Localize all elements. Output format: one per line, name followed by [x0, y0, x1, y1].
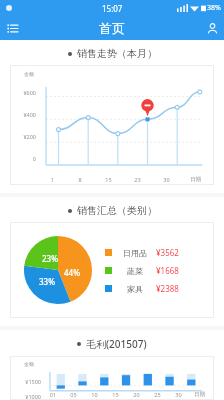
staticText: 蔬菜	[118, 266, 152, 276]
staticText: 20	[126, 391, 147, 398]
staticText: ¥1668	[156, 265, 179, 276]
staticText: 销售汇总（类别）	[77, 204, 157, 217]
staticText: 23	[123, 176, 152, 183]
staticText: 38%	[207, 3, 221, 13]
staticText: 日用品	[118, 248, 152, 258]
staticText: 毛利(201507)	[86, 337, 147, 351]
button[interactable]: 家具	[105, 283, 208, 294]
staticText: 25	[147, 391, 168, 398]
staticText: ¥200	[12, 133, 36, 140]
staticText: 日期	[189, 391, 210, 398]
button[interactable]: 蔬菜	[105, 265, 208, 276]
staticText: 金额	[24, 361, 34, 367]
staticText: 首页	[99, 20, 125, 36]
staticText: ¥3562	[156, 247, 179, 258]
button[interactable]: Profile	[200, 16, 224, 40]
staticText: ¥600	[12, 89, 36, 96]
staticText: 销售走势（本月）	[77, 47, 157, 60]
staticText: 30	[168, 391, 189, 398]
button[interactable]: Menu	[0, 16, 24, 40]
button[interactable]: 销售走势（本月）	[0, 40, 224, 193]
staticText: 01	[43, 391, 63, 398]
staticText: 15:07	[102, 3, 123, 14]
staticText: 0	[12, 155, 36, 162]
staticText: 30	[152, 176, 181, 183]
staticText: 8	[66, 176, 94, 183]
button[interactable]: 销售汇总（类别）	[0, 197, 224, 326]
staticText: ¥1500	[12, 378, 41, 385]
staticText: 15	[94, 176, 123, 183]
staticText: 05	[63, 391, 84, 398]
staticText: 10	[84, 391, 105, 398]
staticText: 家具	[118, 284, 152, 294]
staticText: 33%	[39, 276, 55, 287]
staticText: 23%	[42, 253, 58, 264]
staticText: ¥400	[12, 111, 36, 118]
staticText: ¥1000	[12, 393, 41, 400]
button[interactable]: 日用品	[105, 247, 208, 258]
staticText: 金额	[24, 71, 34, 77]
staticText: 15	[105, 391, 126, 398]
staticText: 1	[38, 176, 66, 183]
staticText: 日期	[181, 176, 210, 183]
button[interactable]: 毛利(201507)	[0, 330, 224, 400]
staticText: 44%	[64, 267, 80, 278]
staticText: ¥2388	[156, 283, 179, 294]
